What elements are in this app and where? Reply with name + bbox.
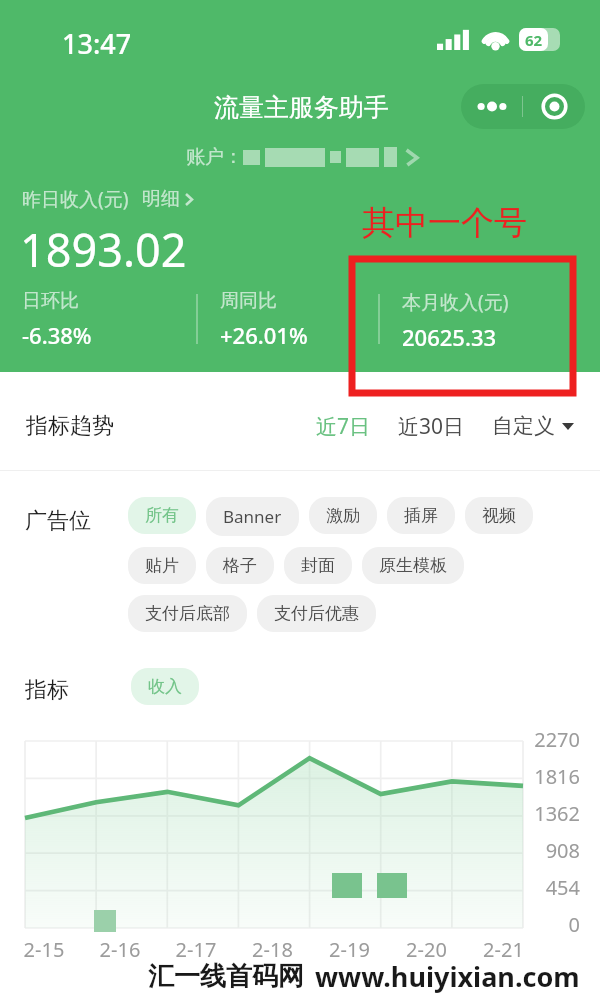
staticText: 账户： [186, 145, 243, 169]
staticText: 指标趋势 [26, 412, 114, 440]
staticText: 周同比 [220, 289, 277, 313]
staticText: 近7日 [316, 412, 371, 441]
staticText: 0 [526, 911, 580, 948]
button[interactable]: 支付后底部 [128, 595, 247, 632]
button[interactable]: 视频 [465, 497, 533, 534]
staticText: 支付后底部 [145, 603, 230, 624]
staticText: 454 [526, 874, 580, 911]
staticText: 908 [526, 837, 580, 874]
staticText: 所有 [145, 505, 179, 526]
staticText: 激励 [326, 505, 360, 526]
staticText: 1893.02 [20, 219, 187, 280]
button[interactable]: 自定义 [485, 406, 574, 446]
staticText: 封面 [301, 555, 335, 576]
staticText: 2-19 [311, 936, 388, 963]
staticText: -6.38% [22, 320, 92, 350]
staticText: 2-17 [158, 936, 234, 963]
staticText: 指标 [25, 676, 69, 704]
button[interactable]: 插屏 [387, 497, 455, 534]
button[interactable]: Banner [206, 497, 299, 536]
button[interactable]: 收入 [131, 668, 199, 705]
staticText: 明细 [142, 187, 180, 211]
staticText: 广告位 [25, 507, 91, 535]
staticText: www.huiyixian.com [315, 958, 580, 995]
staticText: 贴片 [145, 555, 179, 576]
button[interactable]: 激励 [309, 497, 377, 534]
staticText: Banner [223, 505, 282, 528]
button[interactable]: 格子 [206, 547, 274, 584]
button[interactable]: 贴片 [128, 547, 196, 584]
staticText: 支付后优惠 [274, 603, 359, 624]
button[interactable]: 封面 [284, 547, 352, 584]
other: Wi-Fi [481, 28, 510, 51]
staticText: 2-20 [388, 936, 465, 963]
staticText: 近30日 [398, 412, 465, 441]
staticText: 2-16 [82, 936, 158, 963]
staticText: 插屏 [404, 505, 438, 526]
staticText: 流量主服务助手 [214, 92, 389, 123]
staticText: 62 [525, 30, 543, 50]
staticText: 自定义 [492, 413, 555, 439]
button[interactable]: More options [461, 84, 522, 129]
button[interactable]: 账户： [186, 145, 418, 169]
staticText: 2270 [526, 726, 580, 763]
button[interactable]: 所有 [128, 497, 196, 534]
staticText: 2-21 [465, 936, 542, 963]
button[interactable]: 原生模板 [362, 547, 464, 584]
staticText: 1362 [526, 800, 580, 837]
staticText: 日环比 [22, 289, 79, 313]
staticText: 本月收入(元) [402, 289, 509, 315]
staticText: 2-15 [6, 936, 82, 963]
button[interactable]: Close mini program [523, 84, 585, 129]
staticText: 2-18 [234, 936, 311, 963]
staticText: 原生模板 [379, 555, 447, 576]
staticText: 其中一个号 [362, 202, 527, 244]
staticText: 13:47 [62, 25, 132, 62]
staticText: 昨日收入(元) [22, 186, 129, 212]
staticText: 20625.33 [402, 322, 497, 352]
button[interactable]: 近7日 [309, 405, 378, 448]
button[interactable]: 支付后优惠 [257, 595, 376, 632]
staticText: 视频 [482, 505, 516, 526]
staticText: +26.01% [220, 320, 308, 350]
button[interactable]: 昨日收入(元) [22, 186, 193, 212]
staticText: 收入 [148, 676, 182, 697]
button[interactable]: 近30日 [391, 405, 472, 448]
staticText: 格子 [223, 555, 257, 576]
staticText: 1816 [526, 763, 580, 800]
staticText: 汇一线首码网 [148, 960, 304, 993]
